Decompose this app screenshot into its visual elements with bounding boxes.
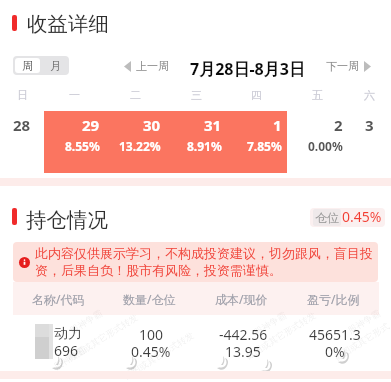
staticText: 股神争霸 xyxy=(52,343,88,372)
staticText: 日 xyxy=(17,88,28,102)
staticText: 盈亏/比例 xyxy=(307,291,360,307)
staticText: 0.45% xyxy=(342,208,382,226)
button[interactable]: 29 xyxy=(44,111,105,173)
staticText: 收益详细 xyxy=(27,11,109,37)
staticText: 696 xyxy=(54,341,79,360)
staticText: 28 xyxy=(13,115,31,135)
staticText: 成本/现价 xyxy=(215,291,268,307)
staticText: 三 xyxy=(191,88,202,102)
staticText: 六 xyxy=(364,88,375,102)
staticText: 2 xyxy=(334,115,343,135)
staticText: 0% xyxy=(325,342,345,361)
staticText: 截图或其它形式转发 xyxy=(243,309,318,362)
staticText: 持仓情况 xyxy=(26,207,108,233)
staticText: 上一周 xyxy=(136,59,169,73)
button[interactable]: 月 xyxy=(42,56,69,75)
staticText: 股神争霸 xyxy=(252,309,288,338)
staticText: 8.91% xyxy=(187,138,222,154)
staticText: 动力 xyxy=(54,325,82,343)
button[interactable]: 31 xyxy=(166,111,227,173)
staticText: 3 xyxy=(365,115,374,135)
staticText: 股神争霸 xyxy=(68,307,104,336)
staticText: 30 xyxy=(143,115,161,135)
staticText: 0.00% xyxy=(308,138,343,154)
staticText: 29 xyxy=(82,115,100,135)
button[interactable]: 下一周 xyxy=(326,58,371,74)
staticText: 31 xyxy=(204,115,222,135)
staticText: 13.22% xyxy=(119,138,161,154)
staticText: 100 xyxy=(139,325,164,344)
staticText: 二 xyxy=(130,88,141,102)
staticText: 名称/代码 xyxy=(32,291,85,307)
staticText: 截图或其它形式转发 xyxy=(65,311,140,364)
staticText: 仓位 xyxy=(315,210,339,225)
button[interactable]: 周 xyxy=(15,58,40,73)
staticText: 四 xyxy=(251,88,262,102)
staticText: 股神争霸 xyxy=(346,307,382,336)
staticText: -442.56 xyxy=(219,325,268,344)
staticText: 8.55% xyxy=(65,138,100,154)
staticText: 周 xyxy=(22,59,33,73)
button[interactable]: 3 xyxy=(348,111,391,173)
staticText: 7月28日-8月3日 xyxy=(190,58,305,80)
staticText: 7.85% xyxy=(247,138,282,154)
staticText: 13.95 xyxy=(225,342,261,361)
staticText: 下一周 xyxy=(326,59,359,73)
staticText: 五 xyxy=(312,88,323,102)
button[interactable]: 1 xyxy=(226,111,287,173)
button[interactable]: 28 xyxy=(0,111,44,173)
staticText: 0.45% xyxy=(131,342,171,361)
staticText: 截图或其它形式 xyxy=(332,320,391,363)
staticText: 月 xyxy=(50,59,61,73)
staticText: 45651.3 xyxy=(309,325,361,344)
staticText: 1 xyxy=(273,115,282,135)
button[interactable]: 上一周 xyxy=(124,58,169,74)
staticText: 截图或其它形式转发 xyxy=(121,329,196,382)
button[interactable]: 30 xyxy=(105,111,166,173)
staticText: 数量/仓位 xyxy=(123,291,176,307)
staticText: 此内容仅供展示学习，不构成投资建议，切勿跟风，盲目投 资，后果自负！股市有风险，… xyxy=(35,245,373,279)
staticText: 一 xyxy=(69,88,80,102)
button[interactable]: 仓位 xyxy=(310,208,385,227)
button[interactable]: 2 xyxy=(287,111,348,173)
button[interactable]: 动力 xyxy=(0,320,391,365)
